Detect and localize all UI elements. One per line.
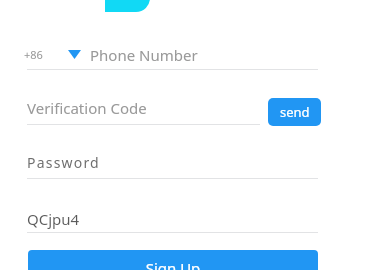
staticText: Verification Code: [27, 98, 147, 118]
staticText: send: [280, 103, 310, 121]
staticText: Password: [27, 153, 100, 172]
button[interactable]: Verification Code: [27, 95, 260, 121]
button[interactable]: Phone Number: [90, 42, 320, 68]
button[interactable]: Sign Up: [28, 250, 318, 270]
staticText: Phone Number: [90, 45, 198, 65]
staticText: Sign Up: [28, 258, 318, 270]
button[interactable]: send: [268, 98, 321, 126]
button[interactable]: Password: [27, 150, 318, 176]
staticText: +86: [24, 47, 43, 62]
staticText: QCjpu4: [27, 209, 80, 229]
button[interactable]: Select country code: [24, 44, 82, 66]
button[interactable]: QCjpu4: [27, 206, 318, 232]
